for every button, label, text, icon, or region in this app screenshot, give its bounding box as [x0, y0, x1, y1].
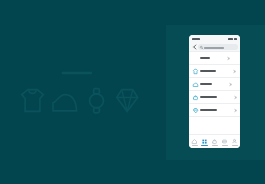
button[interactable] [189, 65, 240, 77]
button[interactable]: Categories [200, 139, 209, 146]
button[interactable]: Offers [220, 139, 229, 146]
button[interactable] [189, 78, 240, 90]
button[interactable]: Cart [210, 139, 219, 146]
button[interactable]: Account [230, 139, 239, 146]
button[interactable]: Home [190, 139, 199, 146]
button[interactable] [189, 91, 240, 103]
button[interactable] [198, 44, 238, 50]
button[interactable]: Back [191, 43, 198, 50]
button[interactable] [189, 104, 240, 116]
button[interactable] [189, 52, 240, 64]
